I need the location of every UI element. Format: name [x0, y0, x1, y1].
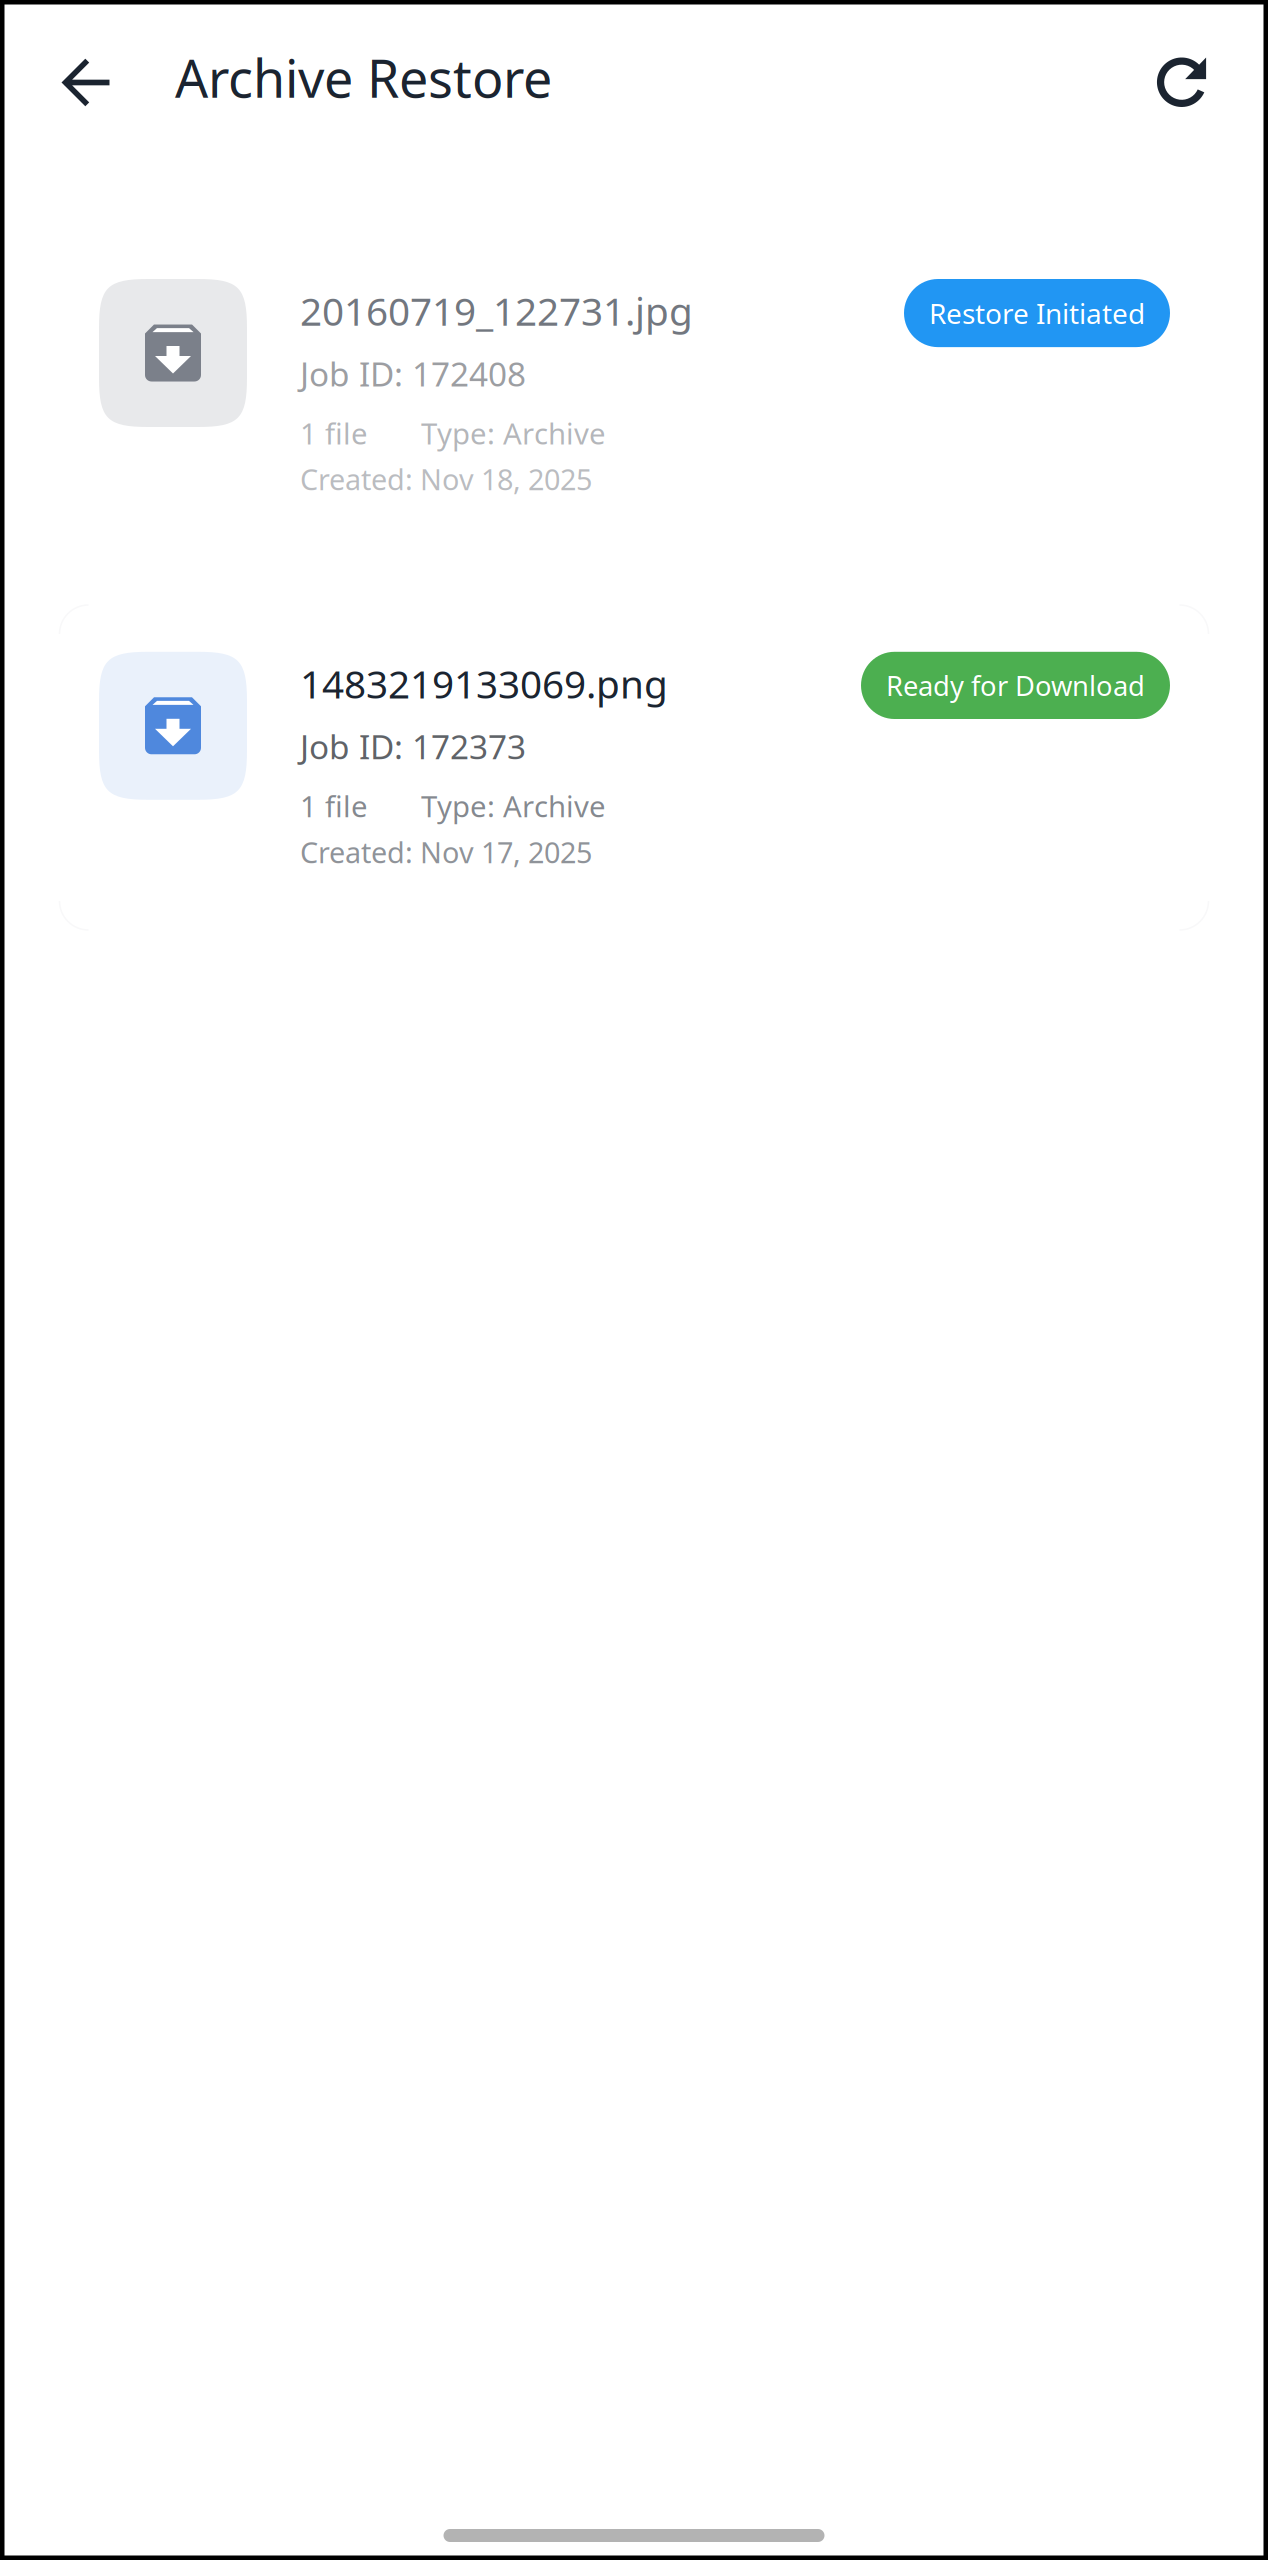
staticText: Restore Initiated — [929, 294, 1145, 332]
staticText: Type: Archive — [421, 786, 606, 825]
staticText: Created: Nov 18, 2025 — [300, 460, 592, 499]
staticText: Archive Restore — [175, 43, 552, 112]
button[interactable]: Restore Initiated — [904, 279, 1170, 347]
staticText: Job ID: 172373 — [300, 724, 526, 768]
staticText: Job ID: 172408 — [300, 351, 526, 396]
button[interactable]: Ready for Download — [861, 652, 1170, 719]
button[interactable]: 1483219133069.png — [99, 652, 1170, 872]
staticText: Type: Archive — [421, 414, 606, 453]
staticText: Created: Nov 17, 2025 — [300, 832, 592, 872]
staticText: 20160719_122731.jpg — [300, 285, 693, 336]
button[interactable]: 20160719_122731.jpg — [99, 279, 1170, 499]
staticText: 1 file — [300, 786, 368, 825]
staticText: 1 file — [300, 414, 368, 453]
button[interactable]: Back — [55, 51, 117, 113]
staticText: Ready for Download — [886, 667, 1145, 704]
button[interactable]: Refresh — [1151, 51, 1213, 113]
staticText: 1483219133069.png — [300, 658, 668, 709]
